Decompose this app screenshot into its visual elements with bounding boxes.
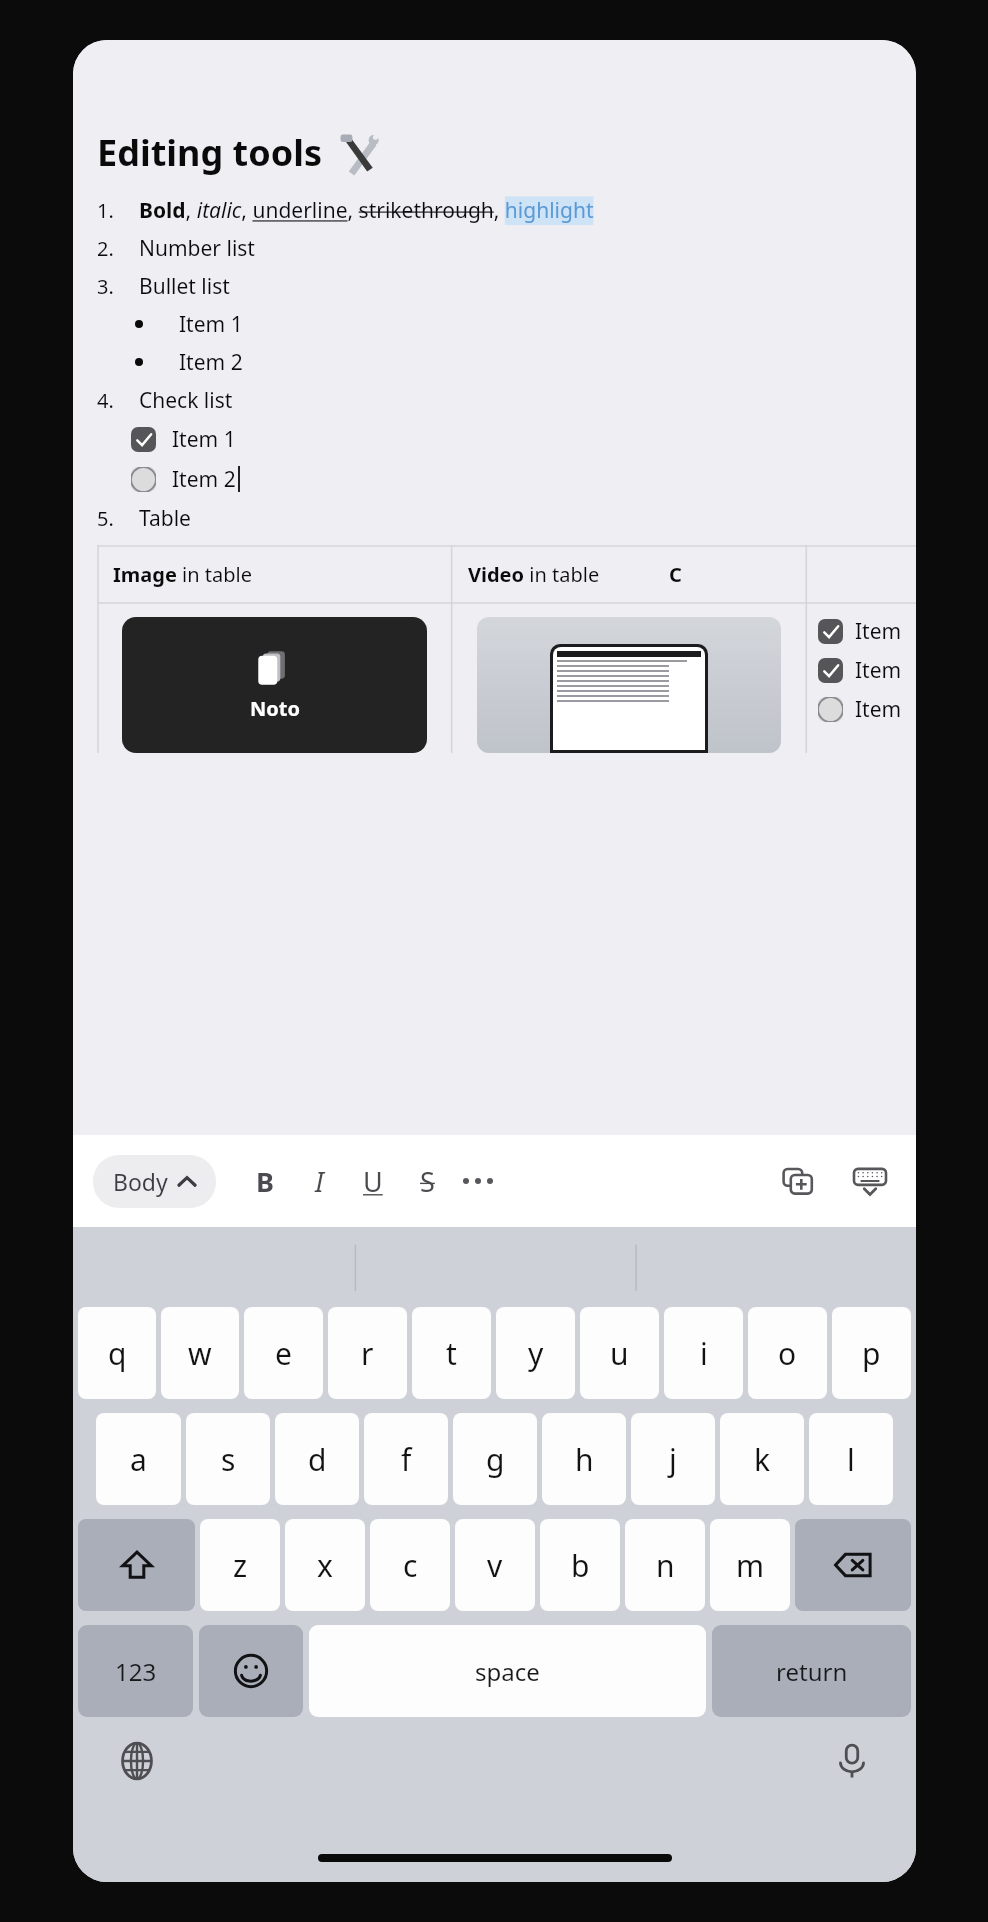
staticText: space bbox=[475, 1655, 540, 1688]
staticText: 4. bbox=[97, 387, 114, 414]
button[interactable]: Bold bbox=[238, 1154, 292, 1208]
button[interactable]: Voice input bbox=[826, 1735, 878, 1787]
button[interactable]: Shift bbox=[78, 1519, 195, 1611]
staticText: a bbox=[130, 1439, 147, 1480]
button[interactable]: c bbox=[370, 1519, 450, 1611]
staticText: z bbox=[233, 1545, 248, 1586]
button[interactable]: space bbox=[309, 1625, 706, 1717]
staticText: d bbox=[308, 1439, 327, 1480]
staticText: s bbox=[221, 1439, 236, 1480]
staticText: q bbox=[108, 1333, 127, 1374]
staticText: 1. bbox=[97, 197, 114, 224]
button[interactable]: Body bbox=[93, 1155, 216, 1208]
staticText: Image in table bbox=[113, 561, 252, 588]
button[interactable]: u bbox=[580, 1307, 659, 1399]
staticText: o bbox=[778, 1333, 797, 1374]
button[interactable]: i bbox=[664, 1307, 743, 1399]
staticText: r bbox=[361, 1333, 374, 1374]
staticText: p bbox=[862, 1333, 881, 1374]
staticText: e bbox=[275, 1333, 292, 1374]
button[interactable]: Underline bbox=[346, 1154, 400, 1208]
staticText: Item 1 bbox=[179, 310, 243, 339]
button[interactable]: s bbox=[186, 1413, 270, 1505]
staticText: Item 1 bbox=[172, 425, 236, 454]
staticText: f bbox=[401, 1439, 412, 1480]
staticText: Check list bbox=[139, 386, 233, 415]
button[interactable]: v bbox=[455, 1519, 535, 1611]
staticText: Noto bbox=[250, 695, 300, 722]
staticText: 2. bbox=[97, 235, 114, 262]
staticText: w bbox=[188, 1333, 212, 1374]
staticText: g bbox=[486, 1439, 505, 1480]
staticText: h bbox=[575, 1439, 594, 1480]
staticText: Number list bbox=[139, 234, 255, 263]
staticText: return bbox=[776, 1655, 848, 1688]
staticText: v bbox=[487, 1545, 503, 1586]
staticText: c bbox=[403, 1545, 418, 1586]
button[interactable]: l bbox=[809, 1413, 893, 1505]
staticText: y bbox=[528, 1333, 544, 1374]
staticText: Table bbox=[139, 504, 191, 533]
staticText: I bbox=[315, 1163, 324, 1200]
button[interactable]: g bbox=[453, 1413, 537, 1505]
staticText: Check lis bbox=[669, 561, 688, 588]
staticText: t bbox=[446, 1333, 457, 1374]
staticText: Editing tools bbox=[97, 128, 323, 177]
staticText: k bbox=[754, 1439, 771, 1480]
staticText: u bbox=[610, 1333, 629, 1374]
staticText: Item bbox=[855, 617, 902, 646]
staticText: l bbox=[847, 1439, 855, 1480]
staticText: 123 bbox=[115, 1655, 157, 1688]
staticText: S bbox=[420, 1163, 435, 1200]
staticText: Item 2 bbox=[172, 465, 236, 494]
staticText: Item bbox=[855, 695, 902, 724]
button[interactable]: return bbox=[712, 1625, 911, 1717]
staticText: x bbox=[317, 1545, 333, 1586]
button[interactable]: b bbox=[540, 1519, 620, 1611]
staticText: Video in table bbox=[468, 561, 600, 588]
button[interactable]: k bbox=[720, 1413, 804, 1505]
staticText: j bbox=[669, 1439, 677, 1480]
button[interactable]: Item 1 bbox=[131, 419, 916, 459]
button[interactable]: h bbox=[542, 1413, 626, 1505]
staticText: B bbox=[256, 1163, 274, 1200]
button[interactable]: x bbox=[285, 1519, 365, 1611]
staticText: 3. bbox=[97, 273, 114, 300]
button[interactable]: n bbox=[625, 1519, 705, 1611]
staticText: b bbox=[571, 1545, 590, 1586]
staticText: Bold, italic, underline, strikethrough, … bbox=[139, 196, 594, 225]
staticText: 5. bbox=[97, 505, 114, 532]
button[interactable]: d bbox=[275, 1413, 359, 1505]
button[interactable]: Item 2 bbox=[131, 459, 916, 499]
button[interactable]: More options bbox=[454, 1157, 502, 1205]
button[interactable]: Backspace bbox=[795, 1519, 911, 1611]
button[interactable]: e bbox=[244, 1307, 323, 1399]
button[interactable]: r bbox=[328, 1307, 407, 1399]
staticText: U bbox=[363, 1163, 383, 1200]
button[interactable]: m bbox=[710, 1519, 790, 1611]
button[interactable]: y bbox=[496, 1307, 575, 1399]
staticText: n bbox=[656, 1545, 675, 1586]
staticText: m bbox=[736, 1545, 765, 1586]
button[interactable]: Insert bbox=[772, 1155, 824, 1207]
button[interactable]: a bbox=[96, 1413, 181, 1505]
button[interactable]: f bbox=[364, 1413, 448, 1505]
button[interactable]: 123 bbox=[78, 1625, 193, 1717]
button[interactable]: w bbox=[161, 1307, 239, 1399]
button[interactable]: Emoji bbox=[199, 1625, 303, 1717]
staticText: Item bbox=[855, 656, 902, 685]
button[interactable]: Italic bbox=[292, 1154, 346, 1208]
staticText: Item 2 bbox=[179, 348, 243, 377]
button[interactable]: p bbox=[832, 1307, 911, 1399]
button[interactable]: Change language bbox=[111, 1735, 163, 1787]
button[interactable]: Hide keyboard bbox=[844, 1155, 896, 1207]
button[interactable]: z bbox=[200, 1519, 280, 1611]
staticText: Bullet list bbox=[139, 272, 230, 301]
staticText: i bbox=[700, 1333, 708, 1374]
button[interactable]: Strikethrough bbox=[400, 1154, 454, 1208]
button[interactable]: j bbox=[631, 1413, 715, 1505]
button[interactable]: q bbox=[78, 1307, 156, 1399]
staticText: Body bbox=[113, 1166, 168, 1197]
button[interactable]: t bbox=[412, 1307, 491, 1399]
button[interactable]: o bbox=[748, 1307, 827, 1399]
